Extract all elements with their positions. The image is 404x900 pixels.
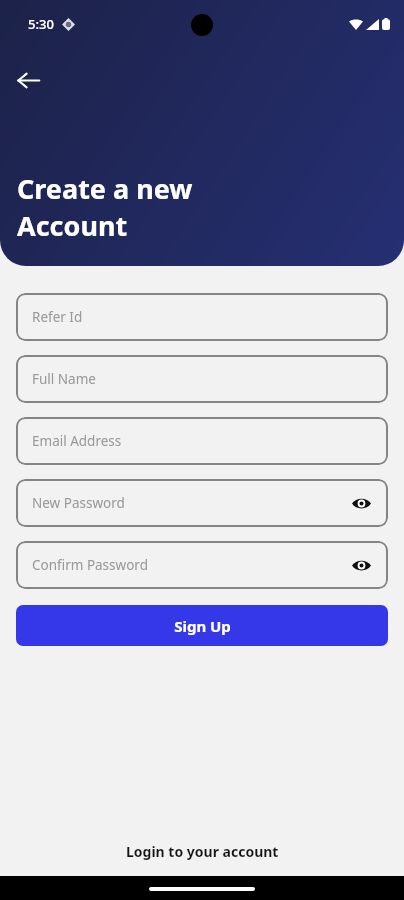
button[interactable]: Toggle password visibility xyxy=(348,490,374,516)
staticText: Account xyxy=(17,207,128,244)
staticText: Confirm Password xyxy=(32,556,348,574)
button[interactable]: Confirm Password xyxy=(16,541,388,589)
staticText: New Password xyxy=(32,494,348,512)
button[interactable]: Login to your account xyxy=(116,838,289,865)
button[interactable]: New Password xyxy=(16,479,388,527)
staticText: Login to your account xyxy=(126,842,279,861)
staticText: Create a new xyxy=(17,170,193,207)
button[interactable]: Refer Id xyxy=(16,293,388,341)
staticText: 5:30 xyxy=(28,15,54,33)
staticText: Sign Up xyxy=(174,616,231,636)
staticText: Refer Id xyxy=(32,308,374,326)
button[interactable]: Toggle password visibility xyxy=(348,552,374,578)
button[interactable]: Email Address xyxy=(16,417,388,465)
staticText: Full Name xyxy=(32,370,374,388)
staticText: Email Address xyxy=(32,432,374,450)
button[interactable]: Sign Up xyxy=(16,605,388,646)
button[interactable]: Full Name xyxy=(16,355,388,403)
button[interactable]: Back xyxy=(6,58,50,102)
